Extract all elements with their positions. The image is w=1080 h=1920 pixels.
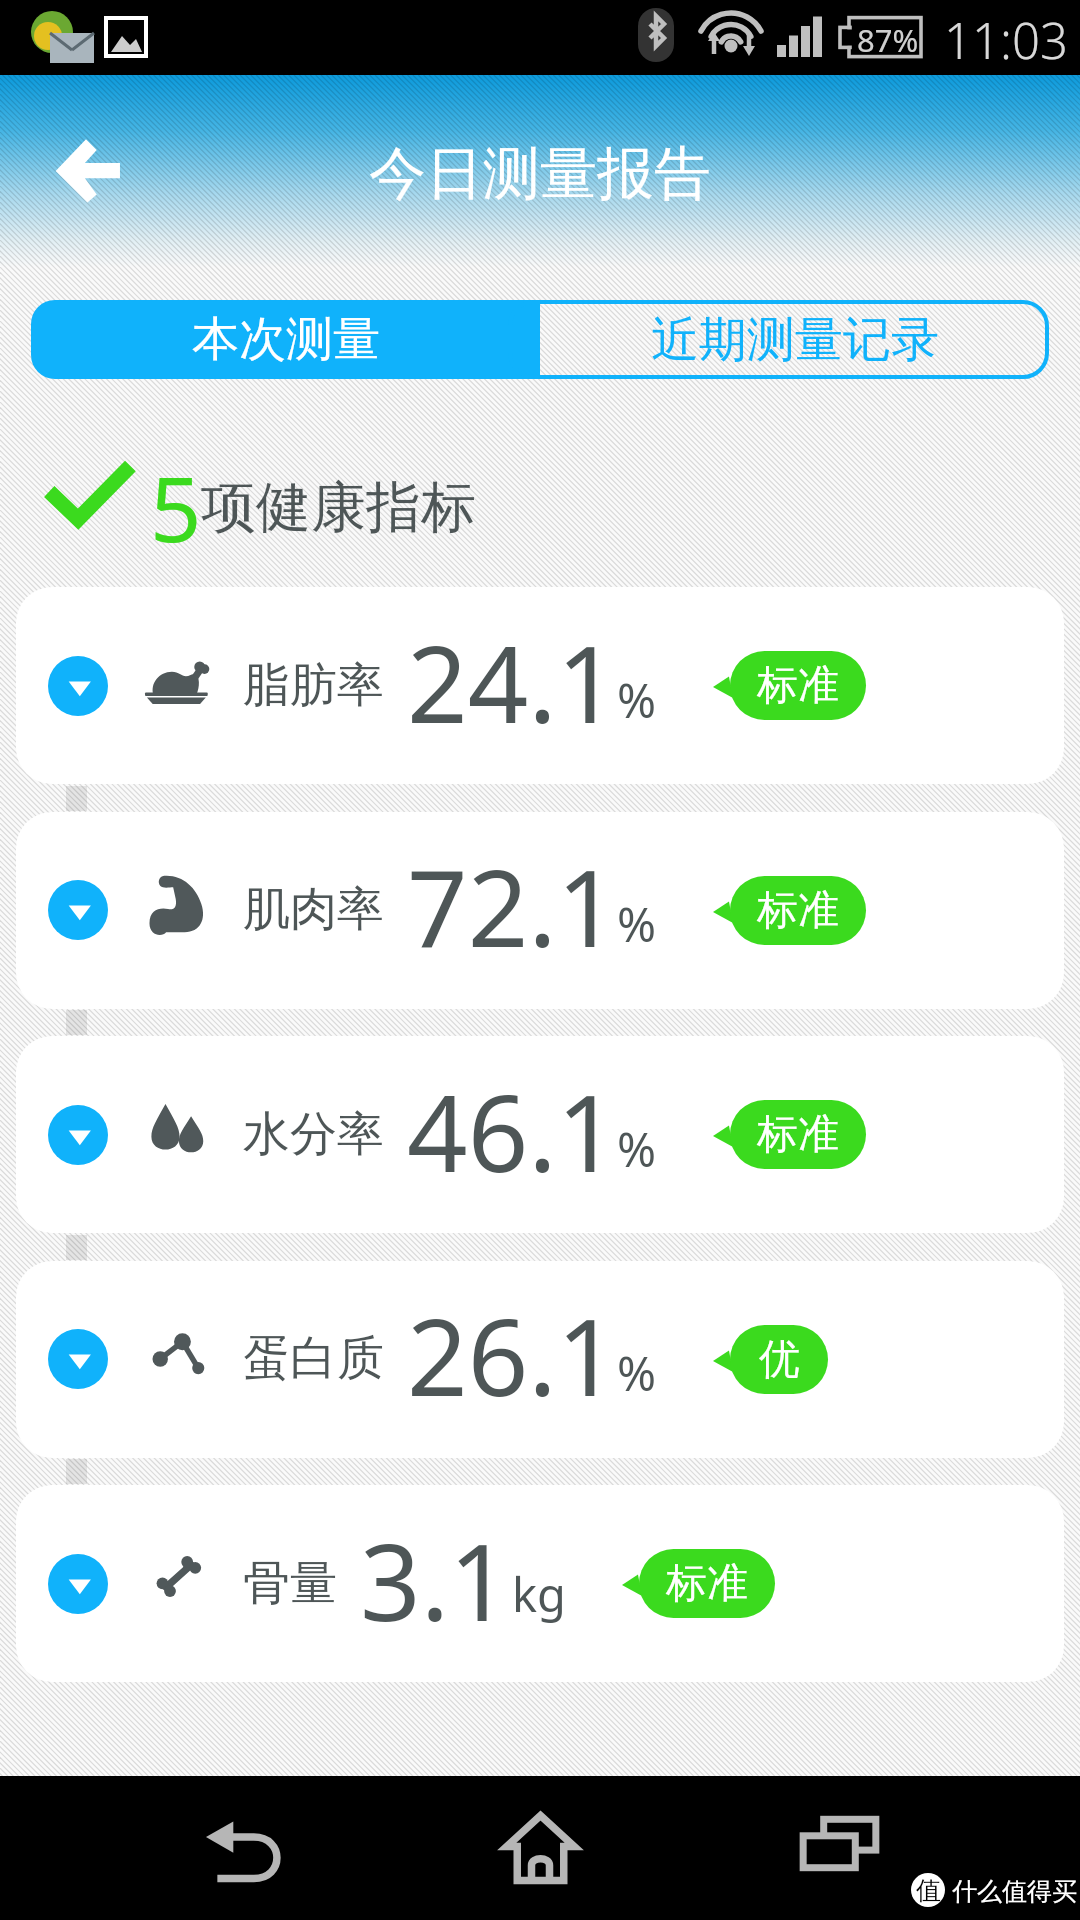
button[interactable] — [16, 1261, 1064, 1458]
staticText: % — [617, 668, 657, 732]
staticText: 脂肪率 — [243, 656, 384, 715]
button[interactable]: 优 — [730, 1325, 828, 1394]
staticText: 什么值得买 — [952, 1876, 1077, 1907]
staticText: 蛋白质 — [243, 1329, 384, 1388]
staticText: 标准 — [757, 885, 839, 937]
button[interactable] — [16, 587, 1064, 784]
button[interactable]: Expand 脂肪率 — [48, 656, 108, 716]
staticText: 3.1 — [360, 1508, 510, 1652]
staticText: % — [617, 1341, 657, 1405]
button[interactable]: Recent apps — [800, 1816, 879, 1871]
staticText: 72.1 — [407, 834, 618, 978]
staticText: 优 — [759, 1334, 800, 1386]
button[interactable] — [16, 1485, 1064, 1682]
staticText: 标准 — [757, 660, 839, 712]
button[interactable]: Home — [503, 1812, 578, 1884]
button[interactable]: Expand 水分率 — [48, 1105, 108, 1165]
button[interactable] — [16, 812, 1064, 1009]
staticText: % — [617, 892, 657, 956]
button[interactable]: 本次测量 — [31, 300, 540, 379]
staticText: 项健康指标 — [201, 473, 476, 542]
staticText: 11:03 — [944, 7, 1068, 74]
staticText: 标准 — [757, 1109, 839, 1161]
staticText: 水分率 — [243, 1105, 384, 1164]
staticText: 46.1 — [407, 1059, 618, 1203]
staticText: % — [617, 1117, 657, 1181]
staticText: 今日测量报告 — [369, 138, 711, 210]
staticText: 24.1 — [407, 610, 618, 754]
button[interactable]: Back — [190, 1804, 304, 1896]
staticText: 本次测量 — [192, 310, 380, 369]
staticText: 26.1 — [407, 1283, 618, 1427]
button[interactable]: 标准 — [639, 1549, 775, 1618]
staticText: 标准 — [666, 1558, 748, 1610]
button[interactable]: Expand 骨量 — [48, 1554, 108, 1614]
button[interactable]: 标准 — [730, 651, 866, 720]
button[interactable]: Expand 肌肉率 — [48, 880, 108, 940]
button[interactable]: 标准 — [730, 876, 866, 945]
staticText: 5 — [150, 446, 202, 569]
staticText: 87% — [857, 19, 919, 61]
button[interactable]: 标准 — [730, 1100, 866, 1169]
staticText: 肌肉率 — [243, 880, 384, 939]
button[interactable]: 近期测量记录 — [540, 300, 1049, 379]
button[interactable]: Back — [40, 124, 136, 218]
staticText: kg — [512, 1562, 567, 1626]
staticText: 骨量 — [243, 1554, 337, 1613]
staticText: 近期测量记录 — [651, 310, 939, 370]
button[interactable]: Expand 蛋白质 — [48, 1329, 108, 1389]
staticText: 值 — [916, 1875, 941, 1906]
button[interactable] — [16, 1036, 1064, 1233]
